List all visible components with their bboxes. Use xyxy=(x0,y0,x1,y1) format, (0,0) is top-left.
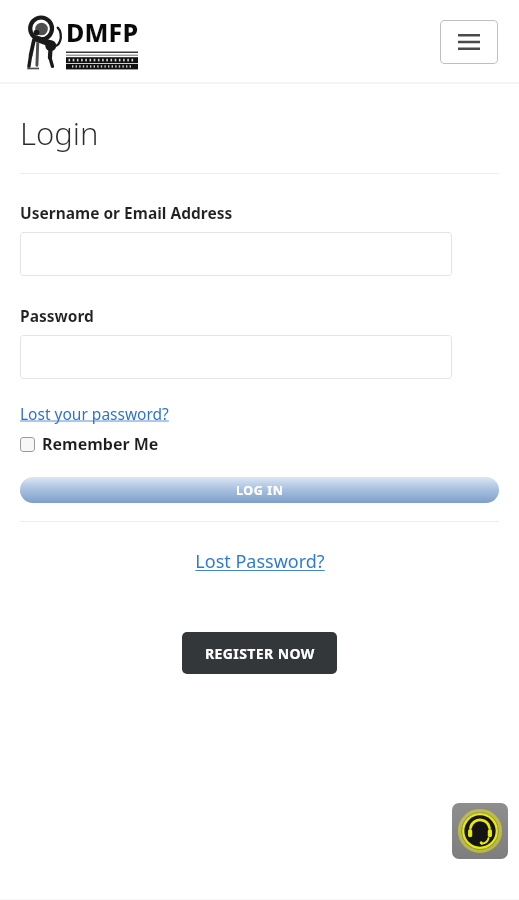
button[interactable]: Lost Password? xyxy=(195,549,325,574)
staticText: REGISTER NOW xyxy=(205,644,315,663)
button[interactable] xyxy=(20,232,452,276)
button[interactable]: REGISTER NOW xyxy=(182,632,337,674)
button[interactable] xyxy=(20,335,452,379)
staticText: Password xyxy=(20,305,94,326)
button[interactable]: Remember Me xyxy=(20,433,159,455)
staticText: Login xyxy=(20,112,99,154)
staticText: Username or Email Address xyxy=(20,202,233,223)
button[interactable]: DMFP xyxy=(18,15,139,70)
button[interactable]: Open menu xyxy=(440,20,498,64)
button[interactable]: LOG IN xyxy=(20,477,499,503)
staticText: Lost Password? xyxy=(195,549,325,574)
staticText: DMFP xyxy=(66,15,139,49)
staticText: Lost your password? xyxy=(20,403,169,424)
staticText: Remember Me xyxy=(42,433,159,455)
button[interactable]: Lost your password? xyxy=(20,403,169,424)
staticText: LOG IN xyxy=(236,482,284,499)
button[interactable]: Support headset xyxy=(452,803,508,859)
